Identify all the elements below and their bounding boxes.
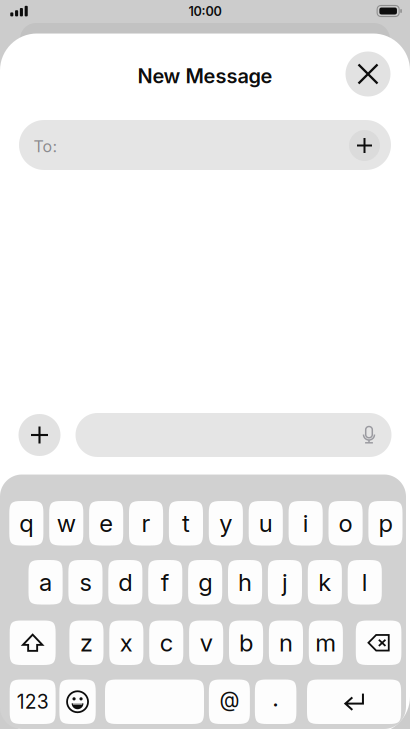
- button[interactable]: b: [229, 620, 263, 665]
- button[interactable]: u: [249, 501, 283, 545]
- button[interactable]: @: [209, 679, 250, 724]
- button[interactable]: f: [148, 560, 182, 604]
- staticText: k: [318, 568, 331, 597]
- staticText: b: [239, 628, 253, 657]
- staticText: x: [120, 628, 133, 657]
- button[interactable]: a: [28, 560, 63, 604]
- staticText: d: [118, 568, 132, 597]
- staticText: .: [272, 683, 279, 712]
- button[interactable]: space: [105, 679, 204, 724]
- button[interactable]: z: [69, 620, 103, 665]
- button[interactable]: m: [309, 620, 343, 665]
- button[interactable]: n: [269, 620, 303, 665]
- staticText: y: [219, 509, 232, 538]
- button[interactable]: e: [89, 501, 123, 545]
- button[interactable]: l: [348, 560, 382, 604]
- button[interactable]: q: [9, 501, 43, 545]
- button[interactable]: i: [289, 501, 323, 545]
- staticText: c: [160, 628, 173, 657]
- button[interactable]: o: [328, 501, 363, 545]
- button[interactable]: v: [189, 620, 223, 665]
- staticText: 10:00: [188, 4, 221, 19]
- button[interactable]: Emoji: [59, 679, 96, 724]
- staticText: h: [238, 568, 252, 597]
- button[interactable]: p: [368, 501, 402, 545]
- button[interactable]: t: [169, 501, 203, 545]
- staticText: r: [142, 509, 151, 538]
- button[interactable]: c: [149, 620, 183, 665]
- button[interactable]: Delete: [356, 620, 401, 665]
- button[interactable]: y: [209, 501, 243, 545]
- staticText: n: [279, 628, 293, 657]
- button[interactable]: x: [109, 620, 143, 665]
- button[interactable]: Add recipient: [349, 130, 380, 161]
- button[interactable]: s: [68, 560, 102, 604]
- staticText: i: [303, 509, 309, 538]
- staticText: New Message: [137, 64, 272, 88]
- button[interactable]: j: [268, 560, 302, 604]
- button[interactable]: Close: [345, 51, 390, 96]
- button[interactable]: h: [228, 560, 262, 604]
- staticText: p: [378, 509, 392, 538]
- staticText: m: [315, 628, 336, 657]
- staticText: j: [282, 568, 288, 597]
- staticText: a: [39, 568, 52, 597]
- button[interactable]: .: [255, 679, 296, 724]
- button[interactable]: To:: [19, 120, 391, 170]
- button[interactable]: g: [188, 560, 222, 604]
- button[interactable]: Return: [307, 679, 401, 724]
- button[interactable]: r: [129, 501, 163, 545]
- staticText: e: [99, 509, 113, 538]
- staticText: o: [339, 509, 353, 538]
- staticText: u: [259, 509, 273, 538]
- staticText: f: [161, 568, 170, 597]
- button[interactable]: Message field: [75, 413, 391, 457]
- button[interactable]: d: [108, 560, 142, 604]
- staticText: z: [80, 628, 93, 657]
- staticText: w: [57, 509, 76, 538]
- staticText: g: [198, 568, 212, 597]
- staticText: t: [182, 509, 190, 538]
- staticText: To:: [33, 137, 57, 156]
- staticText: 123: [17, 690, 49, 713]
- staticText: v: [200, 628, 213, 657]
- staticText: l: [362, 568, 368, 597]
- staticText: s: [79, 568, 91, 597]
- button[interactable]: k: [308, 560, 342, 604]
- staticText: @: [219, 687, 239, 712]
- button[interactable]: w: [49, 501, 83, 545]
- button[interactable]: Shift: [10, 620, 56, 665]
- button[interactable]: 123: [10, 679, 56, 724]
- staticText: q: [19, 509, 33, 538]
- button[interactable]: Add attachment: [18, 414, 60, 456]
